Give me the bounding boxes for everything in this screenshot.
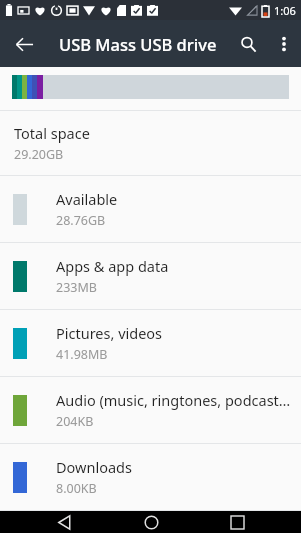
button[interactable]: Available	[0, 176, 301, 242]
staticText: USB Mass USB drive	[59, 33, 217, 55]
staticText: 28.76GB	[56, 212, 106, 229]
staticText: 29.20GB	[14, 146, 64, 163]
button[interactable]: Home	[128, 511, 174, 533]
staticText: Pictures, videos	[56, 323, 163, 343]
staticText: Total space	[14, 123, 90, 143]
button[interactable]: Recent apps	[214, 511, 260, 533]
staticText: 1:06	[274, 3, 296, 18]
button[interactable]: Downloads	[0, 444, 301, 510]
button[interactable]: Pictures, videos	[0, 310, 301, 376]
button[interactable]: Search	[229, 25, 267, 63]
button[interactable]: Back	[41, 511, 87, 533]
button[interactable]: More options	[267, 27, 301, 61]
staticText: Apps & app data	[56, 256, 169, 276]
staticText: 41.98MB	[56, 346, 108, 363]
button[interactable]: Back	[5, 25, 43, 63]
staticText: 233MB	[56, 279, 97, 296]
staticText: Downloads	[56, 457, 132, 477]
staticText: Available	[56, 189, 118, 209]
staticText: 8.00KB	[56, 480, 97, 497]
button[interactable]: Total space	[0, 111, 301, 175]
staticText: 204KB	[56, 413, 94, 430]
button[interactable]: Apps & app data	[0, 243, 301, 309]
staticText: Audio (music, ringtones, podcasts, et..	[56, 390, 291, 410]
button[interactable]: Audio (music, ringtones, podcasts, et..	[0, 377, 301, 443]
